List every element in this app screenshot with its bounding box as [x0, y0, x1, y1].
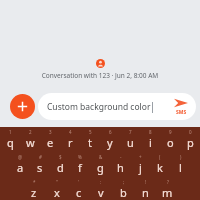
button[interactable]: ;: [112, 179, 134, 200]
button[interactable]: &: [90, 154, 110, 175]
button[interactable]: (: [150, 154, 170, 175]
staticText: ': [78, 179, 80, 185]
staticText: q: [7, 135, 14, 150]
staticText: &: [99, 154, 103, 160]
button[interactable]: ": [45, 179, 68, 200]
staticText: *: [33, 179, 36, 185]
staticText: 0: [189, 129, 192, 135]
staticText: d: [57, 160, 64, 175]
staticText: r: [68, 135, 73, 150]
staticText: e: [47, 135, 54, 150]
button[interactable]: *: [22, 179, 45, 200]
staticText: Custom background color: [47, 101, 151, 113]
staticText: ": [56, 179, 58, 185]
staticText: j: [139, 160, 142, 175]
button[interactable]: Send SMS: [166, 93, 196, 120]
staticText: g: [97, 160, 104, 175]
staticText: ): [180, 154, 182, 160]
button[interactable]: 9: [160, 129, 180, 150]
staticText: -: [120, 154, 122, 160]
staticText: +: [139, 154, 142, 160]
staticText: x: [54, 185, 60, 200]
staticText: (: [159, 154, 161, 160]
button[interactable]: 0: [180, 129, 200, 150]
staticText: SMS: [176, 109, 187, 116]
staticText: v: [98, 185, 104, 200]
staticText: 8: [149, 129, 152, 135]
staticText: i: [149, 135, 152, 150]
staticText: :: [100, 179, 102, 185]
staticText: h: [117, 160, 124, 175]
button[interactable]: ): [170, 154, 190, 175]
staticText: w: [26, 135, 35, 150]
staticText: %: [78, 154, 82, 160]
staticText: a: [17, 160, 24, 175]
staticText: c: [76, 185, 82, 200]
staticText: 9: [169, 129, 172, 135]
staticText: 5: [89, 129, 92, 135]
button[interactable]: ': [68, 179, 90, 200]
staticText: z: [31, 185, 37, 200]
button[interactable]: 1: [0, 129, 20, 150]
staticText: o: [167, 135, 174, 150]
staticText: u: [127, 135, 134, 150]
button[interactable]: 3: [40, 129, 60, 150]
staticText: 1: [9, 129, 12, 135]
staticText: f: [78, 160, 82, 175]
staticText: b: [120, 185, 127, 200]
button[interactable]: 5: [80, 129, 100, 150]
button[interactable]: 7: [120, 129, 140, 150]
staticText: m: [162, 185, 173, 200]
button[interactable]: -: [110, 154, 130, 175]
button[interactable]: +: [130, 154, 150, 175]
staticText: s: [37, 160, 43, 175]
staticText: ;: [123, 179, 125, 185]
button[interactable]: %: [70, 154, 90, 175]
staticText: Conversation with 123 · Jun 2, 8:00 AM: [0, 71, 200, 80]
staticText: t: [88, 135, 92, 150]
staticText: y: [107, 135, 113, 150]
staticText: 7: [129, 129, 132, 135]
staticText: ?: [167, 179, 169, 185]
staticText: 3: [49, 129, 52, 135]
staticText: @: [18, 154, 23, 160]
staticText: #: [39, 154, 42, 160]
staticText: 4: [69, 129, 72, 135]
button[interactable]: Add attachment: [10, 94, 35, 119]
button[interactable]: @: [10, 154, 30, 175]
staticText: 2: [29, 129, 32, 135]
button[interactable]: Custom background color: [47, 93, 166, 120]
button[interactable]: $: [50, 154, 70, 175]
button[interactable]: 6: [100, 129, 120, 150]
staticText: $: [59, 154, 62, 160]
button[interactable]: #: [30, 154, 50, 175]
button[interactable]: 2: [20, 129, 40, 150]
staticText: l: [179, 160, 182, 175]
button[interactable]: 8: [140, 129, 160, 150]
staticText: k: [157, 160, 163, 175]
button[interactable]: !: [134, 179, 156, 200]
button[interactable]: ?: [156, 179, 178, 200]
button[interactable]: :: [90, 179, 112, 200]
staticText: !: [145, 179, 147, 185]
button[interactable]: 4: [60, 129, 80, 150]
staticText: 6: [109, 129, 112, 135]
staticText: p: [187, 135, 194, 150]
staticText: n: [142, 185, 149, 200]
